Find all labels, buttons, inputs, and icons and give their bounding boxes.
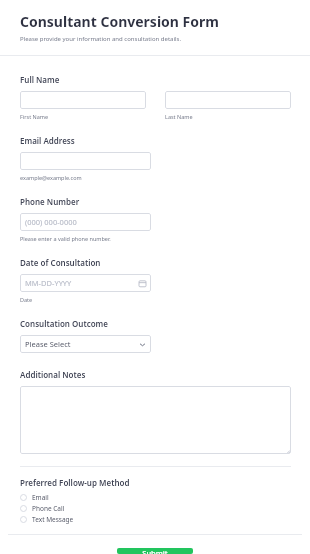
button[interactable] [20, 91, 146, 109]
staticText: Full Name [20, 74, 60, 85]
staticText: Consultation Outcome [20, 318, 108, 329]
staticText: Please enter a valid phone number. [20, 235, 111, 242]
staticText: Phone Call [32, 504, 65, 513]
staticText: First Name [20, 113, 49, 120]
staticText: MM-DD-YYYY [25, 278, 72, 288]
button[interactable]: Text Message [20, 514, 291, 525]
staticText: Date [20, 296, 33, 303]
button[interactable] [20, 152, 151, 170]
staticText: Last Name [165, 113, 193, 120]
button[interactable]: Submit [117, 548, 193, 554]
button[interactable] [165, 91, 291, 109]
button[interactable]: Please Select [20, 335, 151, 353]
button[interactable]: Phone Call [20, 503, 291, 514]
staticText: example@example.com [20, 174, 82, 181]
button[interactable]: (000) 000-0000 [20, 213, 151, 231]
staticText: Text Message [32, 515, 74, 524]
staticText: Email [32, 493, 49, 502]
staticText: Additional Notes [20, 369, 86, 380]
button[interactable]: Email [20, 492, 291, 503]
staticText: Date of Consultation [20, 257, 101, 268]
staticText: Please provide your information and cons… [20, 35, 181, 43]
staticText: Phone Number [20, 196, 80, 207]
button[interactable]: MM-DD-YYYY [20, 274, 151, 292]
staticText: Please Select [25, 339, 71, 349]
staticText: Consultant Conversion Form [20, 12, 219, 31]
staticText: (000) 000-0000 [25, 217, 77, 227]
other: Open dropdown [139, 341, 146, 348]
other: Pick date [139, 280, 146, 287]
staticText: Email Address [20, 135, 75, 146]
button[interactable] [20, 386, 291, 454]
staticText: Submit [142, 548, 168, 554]
staticText: Preferred Follow-up Method [20, 477, 130, 488]
